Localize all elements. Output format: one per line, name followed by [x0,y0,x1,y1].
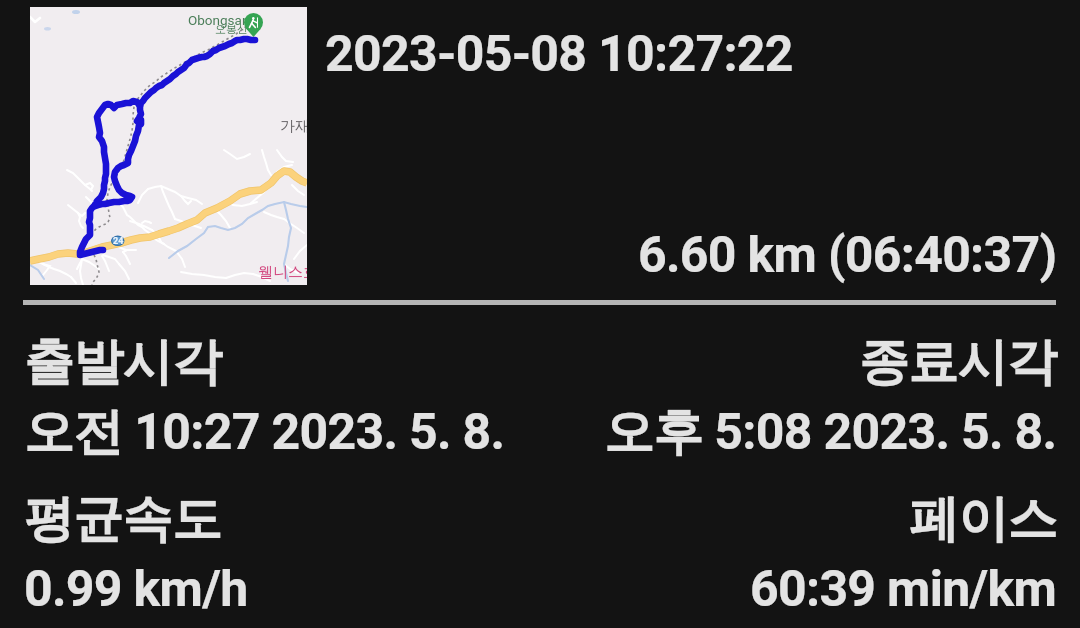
staticText: 오후 5:08 2023. 5. 8. [604,401,1057,464]
staticText: 오전 10:27 2023. 5. 8. [24,401,505,464]
staticText: 60:39 min/km [750,560,1057,619]
staticText: 6.60 km (06:40:37) [638,226,1057,285]
staticText: 가재울 [280,117,307,136]
staticText: 24 [113,236,124,247]
staticText: 웰니스호 [258,263,307,282]
button[interactable]: Route map [30,7,307,285]
staticText: 페이스 [909,488,1057,551]
staticText: 출발시각 [24,331,222,394]
staticText: Obongsan [188,12,250,28]
staticText: 0.99 km/h [24,560,248,619]
staticText: 2023-05-08 10:27:22 [325,25,793,84]
staticText: 오봉산 [215,22,248,36]
staticText: 평균속도 [24,488,222,551]
staticText: 종료시각 [859,331,1057,394]
